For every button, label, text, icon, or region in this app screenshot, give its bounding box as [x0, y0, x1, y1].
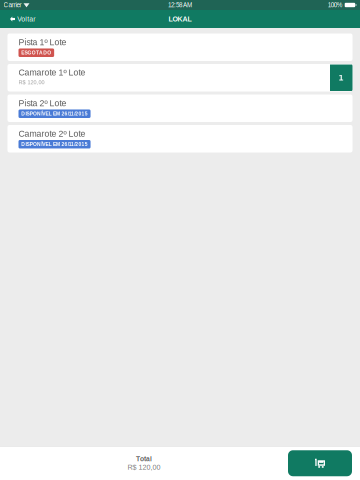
staticText: Total	[136, 455, 152, 463]
button[interactable]: Pista 2º Lote	[7, 94, 352, 122]
staticText: Pista 2º Lote	[18, 98, 66, 108]
staticText: Carrier	[3, 1, 21, 8]
button[interactable]: Carrinho	[288, 450, 352, 476]
staticText: R$ 120,00	[18, 79, 44, 85]
button[interactable]: Camarote 1º Lote	[7, 64, 352, 91]
button[interactable]: Camarote 2º Lote	[7, 125, 352, 152]
staticText: 100%	[328, 1, 343, 8]
staticText: Voltar	[17, 15, 35, 23]
button[interactable]: Voltar	[0, 10, 40, 28]
staticText: Camarote 1º Lote	[18, 68, 85, 77]
staticText: R$ 120,00	[127, 463, 160, 471]
staticText: ESGOTADO	[21, 50, 51, 55]
staticText: DISPONÍVEL EM 26/11/2015	[21, 141, 88, 147]
staticText: 1	[339, 73, 344, 82]
staticText: DISPONÍVEL EM 26/11/2015	[21, 111, 88, 116]
staticText: LOKAL	[168, 15, 191, 23]
button[interactable]: Pista 1º Lote	[7, 33, 352, 61]
staticText: Camarote 2º Lote	[18, 129, 85, 139]
staticText: 12:58 AM	[168, 1, 192, 8]
staticText: Pista 1º Lote	[18, 37, 66, 47]
